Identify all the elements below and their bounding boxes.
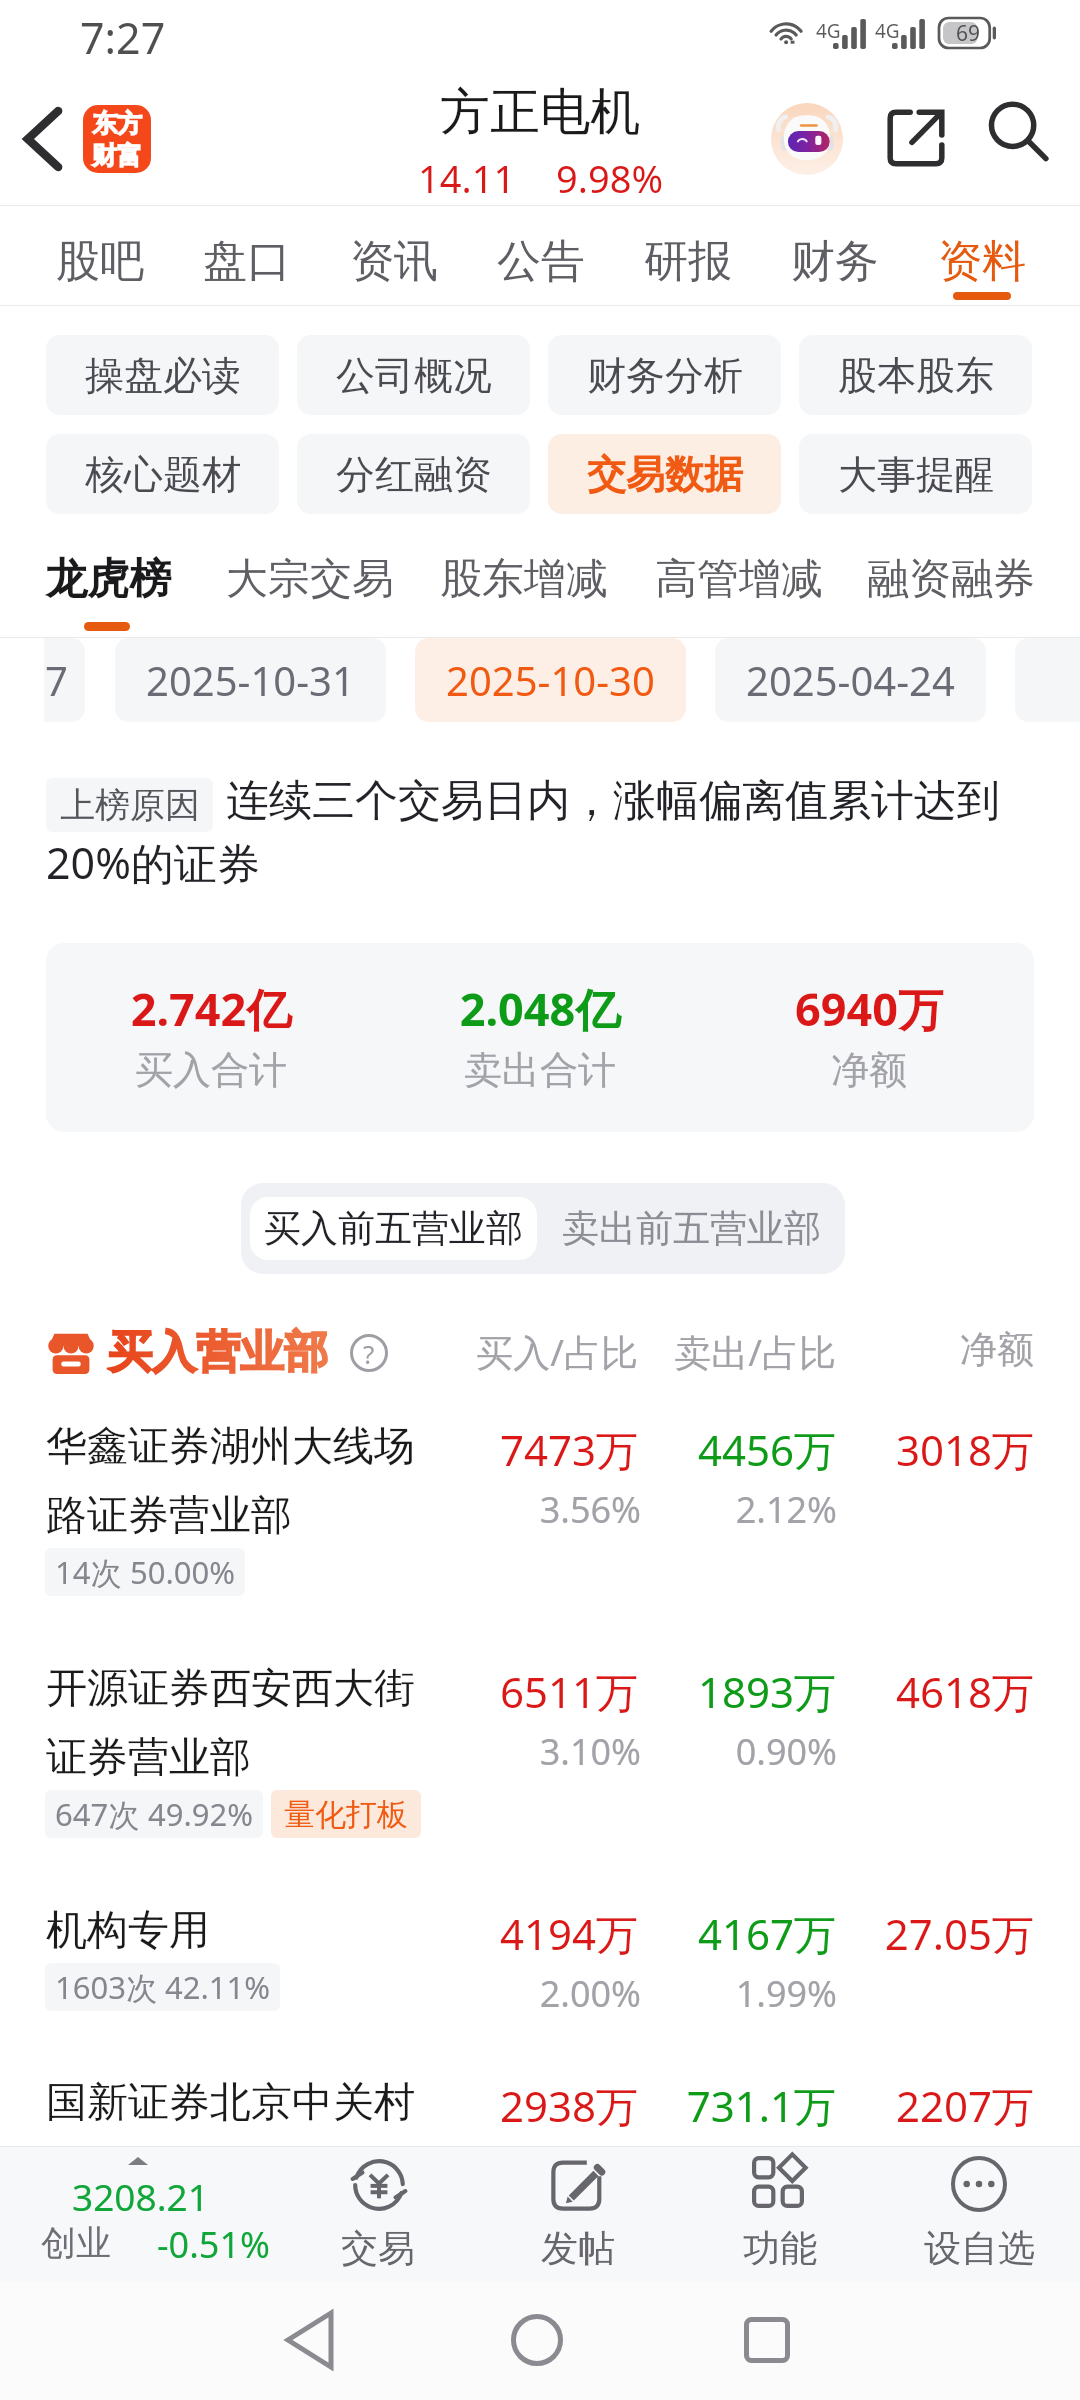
button[interactable]: 交易数据 bbox=[548, 434, 781, 514]
button[interactable]: Search bbox=[983, 97, 1055, 169]
staticText: 净额 bbox=[534, 1326, 1034, 1373]
staticText: 4618万 bbox=[534, 1663, 1034, 1720]
staticText: 卖出前五营业部 bbox=[562, 1205, 821, 1252]
button[interactable]: 分红融资 bbox=[297, 434, 530, 514]
button[interactable]: 华鑫证券湖州大线场 bbox=[0, 1403, 1080, 1645]
button[interactable]: 龙虎榜 bbox=[32, 522, 183, 638]
staticText: 2.00% bbox=[141, 1969, 641, 2018]
staticText: 4G bbox=[875, 18, 900, 44]
button[interactable]: 公告 bbox=[478, 206, 604, 305]
button[interactable]: 操盘必读 bbox=[46, 335, 279, 415]
button[interactable]: 3208.21 bbox=[0, 2147, 300, 2280]
button[interactable]: East Money bbox=[83, 105, 151, 173]
staticText: 操盘必读 bbox=[85, 351, 241, 400]
staticText: 2207万 bbox=[534, 2077, 1034, 2134]
staticText: 1603次 bbox=[55, 1966, 157, 2008]
button[interactable]: Back bbox=[10, 106, 76, 172]
staticText: 上榜原因 bbox=[60, 783, 200, 827]
button[interactable]: Home bbox=[477, 2280, 597, 2400]
staticText: 资料 bbox=[938, 234, 1026, 289]
staticText: 4G bbox=[816, 18, 841, 44]
staticText: 2025-10-30 bbox=[446, 653, 655, 707]
button[interactable]: 盘口 bbox=[184, 206, 310, 305]
staticText: 东方 bbox=[92, 108, 142, 139]
staticText: 公司概况 bbox=[336, 351, 492, 400]
staticText: 69 bbox=[956, 19, 981, 48]
button[interactable]: 股吧 bbox=[37, 206, 163, 305]
staticText: 1.99% bbox=[337, 1969, 837, 2018]
button[interactable]: Recent apps bbox=[707, 2280, 827, 2400]
staticText: 2.048亿 bbox=[240, 978, 840, 1039]
button[interactable]: 大事提醒 bbox=[799, 434, 1032, 514]
staticText: 9.98% bbox=[556, 152, 663, 204]
staticText: 连续三个交易日内，涨幅偏离值累计达到 bbox=[226, 774, 1000, 828]
staticText: 华鑫证券湖州大线场 bbox=[46, 1421, 415, 1473]
staticText: 买入/占比 bbox=[138, 1326, 638, 1377]
button[interactable]: 设自选 bbox=[884, 2147, 1074, 2280]
staticText: 3.56% bbox=[141, 1485, 641, 1534]
staticText: 开源证券西安西大街 bbox=[46, 1663, 415, 1715]
button[interactable]: 发帖 bbox=[483, 2147, 673, 2280]
staticText: 净额 bbox=[569, 1046, 1080, 1094]
button[interactable]: AI assistant bbox=[771, 103, 843, 175]
button[interactable]: 财务分析 bbox=[548, 335, 781, 415]
button[interactable]: 资料 bbox=[919, 206, 1045, 305]
button[interactable]: 开源证券西安西大街 bbox=[0, 1645, 1080, 1887]
staticText: 卖出/占比 bbox=[336, 1326, 836, 1377]
button[interactable]: 财务 bbox=[772, 206, 898, 305]
button[interactable]: Share bbox=[880, 102, 952, 174]
staticText: 7473万 bbox=[138, 1421, 638, 1478]
staticText: 核心题材 bbox=[85, 450, 241, 499]
staticText: 大事提醒 bbox=[838, 450, 994, 499]
button[interactable]: 功能 bbox=[685, 2147, 875, 2280]
staticText: 6511万 bbox=[138, 1663, 638, 1720]
button[interactable]: 高管增减 bbox=[637, 522, 840, 638]
button[interactable]: 核心题材 bbox=[46, 434, 279, 514]
button[interactable]: 买入营业部 bbox=[48, 1325, 388, 1380]
button[interactable]: 机构专用 bbox=[0, 1887, 1080, 2059]
staticText: 大宗交易 bbox=[226, 553, 394, 606]
staticText: 财富 bbox=[92, 140, 142, 171]
button[interactable]: 买入前五营业部 bbox=[250, 1197, 537, 1260]
staticText: 财务 bbox=[791, 234, 879, 289]
staticText: 42.11% bbox=[165, 1966, 270, 2008]
button[interactable]: 股东增减 bbox=[420, 522, 627, 638]
staticText: 4167万 bbox=[336, 1905, 836, 1962]
staticText: 功能 bbox=[743, 2225, 817, 2272]
staticText: 国新证券北京中关村 bbox=[46, 2077, 415, 2129]
staticText: 2.12% bbox=[337, 1485, 837, 1534]
staticText: 量化打板 bbox=[284, 1795, 408, 1834]
staticText: 3.10% bbox=[141, 1727, 641, 1776]
staticText: 股本股东 bbox=[838, 351, 994, 400]
staticText: 4194万 bbox=[138, 1905, 638, 1962]
button[interactable]: 股本股东 bbox=[799, 335, 1032, 415]
button[interactable]: Back bbox=[250, 2280, 370, 2400]
staticText: 1893万 bbox=[336, 1663, 836, 1720]
button[interactable]: 卖出前五营业部 bbox=[548, 1197, 835, 1260]
staticText: 3018万 bbox=[534, 1421, 1034, 1478]
staticText: 研报 bbox=[644, 234, 732, 289]
staticText: 0.90% bbox=[337, 1727, 837, 1776]
button[interactable]: 交易 bbox=[283, 2147, 473, 2280]
staticText: 2025-04-24 bbox=[746, 653, 955, 707]
button[interactable]: 7 bbox=[44, 638, 85, 722]
staticText: 公告 bbox=[497, 234, 585, 289]
staticText: 14.11 bbox=[418, 152, 516, 204]
staticText: 14次 bbox=[55, 1551, 122, 1593]
staticText: 方正电机 bbox=[240, 81, 840, 144]
button[interactable]: 2025-10-31 bbox=[115, 638, 386, 722]
staticText: 7:27 bbox=[80, 8, 166, 67]
button[interactable]: 资讯 bbox=[331, 206, 457, 305]
button[interactable]: 融资融券 bbox=[849, 522, 1052, 638]
staticText: 买入合计 bbox=[0, 1046, 511, 1094]
staticText: 买入营业部 bbox=[108, 1325, 328, 1380]
button[interactable]: 大宗交易 bbox=[208, 522, 411, 638]
staticText: 7 bbox=[45, 653, 68, 707]
button[interactable]: 国新证券北京中关村 bbox=[0, 2059, 1080, 2179]
staticText: 2.742亿 bbox=[0, 978, 511, 1039]
button[interactable]: 研报 bbox=[625, 206, 751, 305]
staticText: ? bbox=[363, 1336, 375, 1371]
button[interactable]: 2025-10-30 bbox=[415, 638, 686, 722]
button[interactable]: 公司概况 bbox=[297, 335, 530, 415]
button[interactable]: 2025-04-24 bbox=[715, 638, 986, 722]
